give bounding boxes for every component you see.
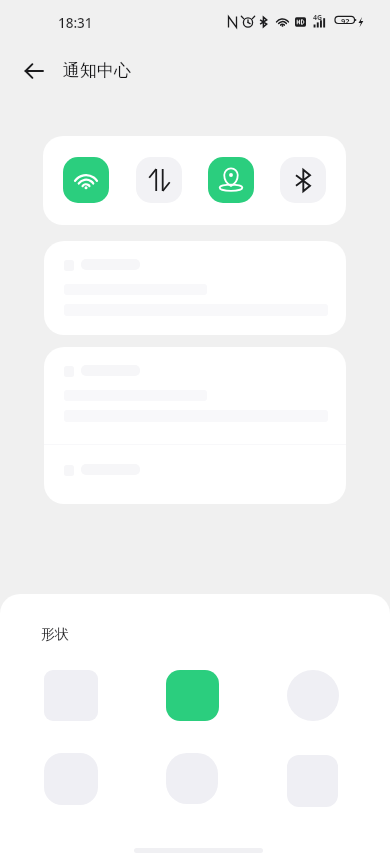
button[interactable]: 通知中心 <box>63 60 131 81</box>
button[interactable]: Quick toggle <box>208 157 254 203</box>
button[interactable]: Shape option <box>44 753 98 805</box>
button[interactable]: Quick toggle <box>63 157 109 203</box>
button[interactable]: Shape option <box>287 755 338 807</box>
staticText: 92 <box>341 16 350 26</box>
button[interactable]: Quick toggle <box>280 157 326 203</box>
staticText: 4G <box>313 13 323 23</box>
button[interactable]: Quick toggle <box>136 157 182 203</box>
button[interactable]: Back <box>15 52 53 90</box>
staticText: 18:31 <box>58 14 93 32</box>
button[interactable]: Shape option <box>166 753 218 804</box>
staticText: 形状 <box>41 626 69 644</box>
button[interactable]: Shape option <box>166 670 219 721</box>
button[interactable]: Shape option <box>287 670 339 721</box>
button[interactable] <box>44 241 346 335</box>
